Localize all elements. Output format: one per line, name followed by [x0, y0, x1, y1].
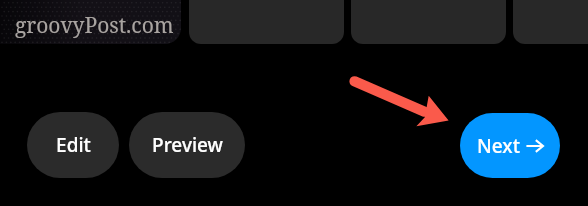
staticText: groovyPost.com: [15, 11, 174, 40]
staticText: Preview: [152, 132, 223, 158]
button[interactable]: Edit: [27, 112, 119, 178]
button[interactable]: Page thumbnail: [351, 0, 506, 44]
button[interactable]: Page thumbnail: [513, 0, 588, 44]
other: Annotation arrow pointing to Next: [0, 0, 588, 206]
button[interactable]: Next: [460, 113, 560, 178]
staticText: Next: [477, 133, 520, 159]
button[interactable]: Preview: [129, 112, 245, 178]
staticText: Edit: [56, 132, 91, 158]
button[interactable]: Page thumbnail: [189, 0, 344, 44]
